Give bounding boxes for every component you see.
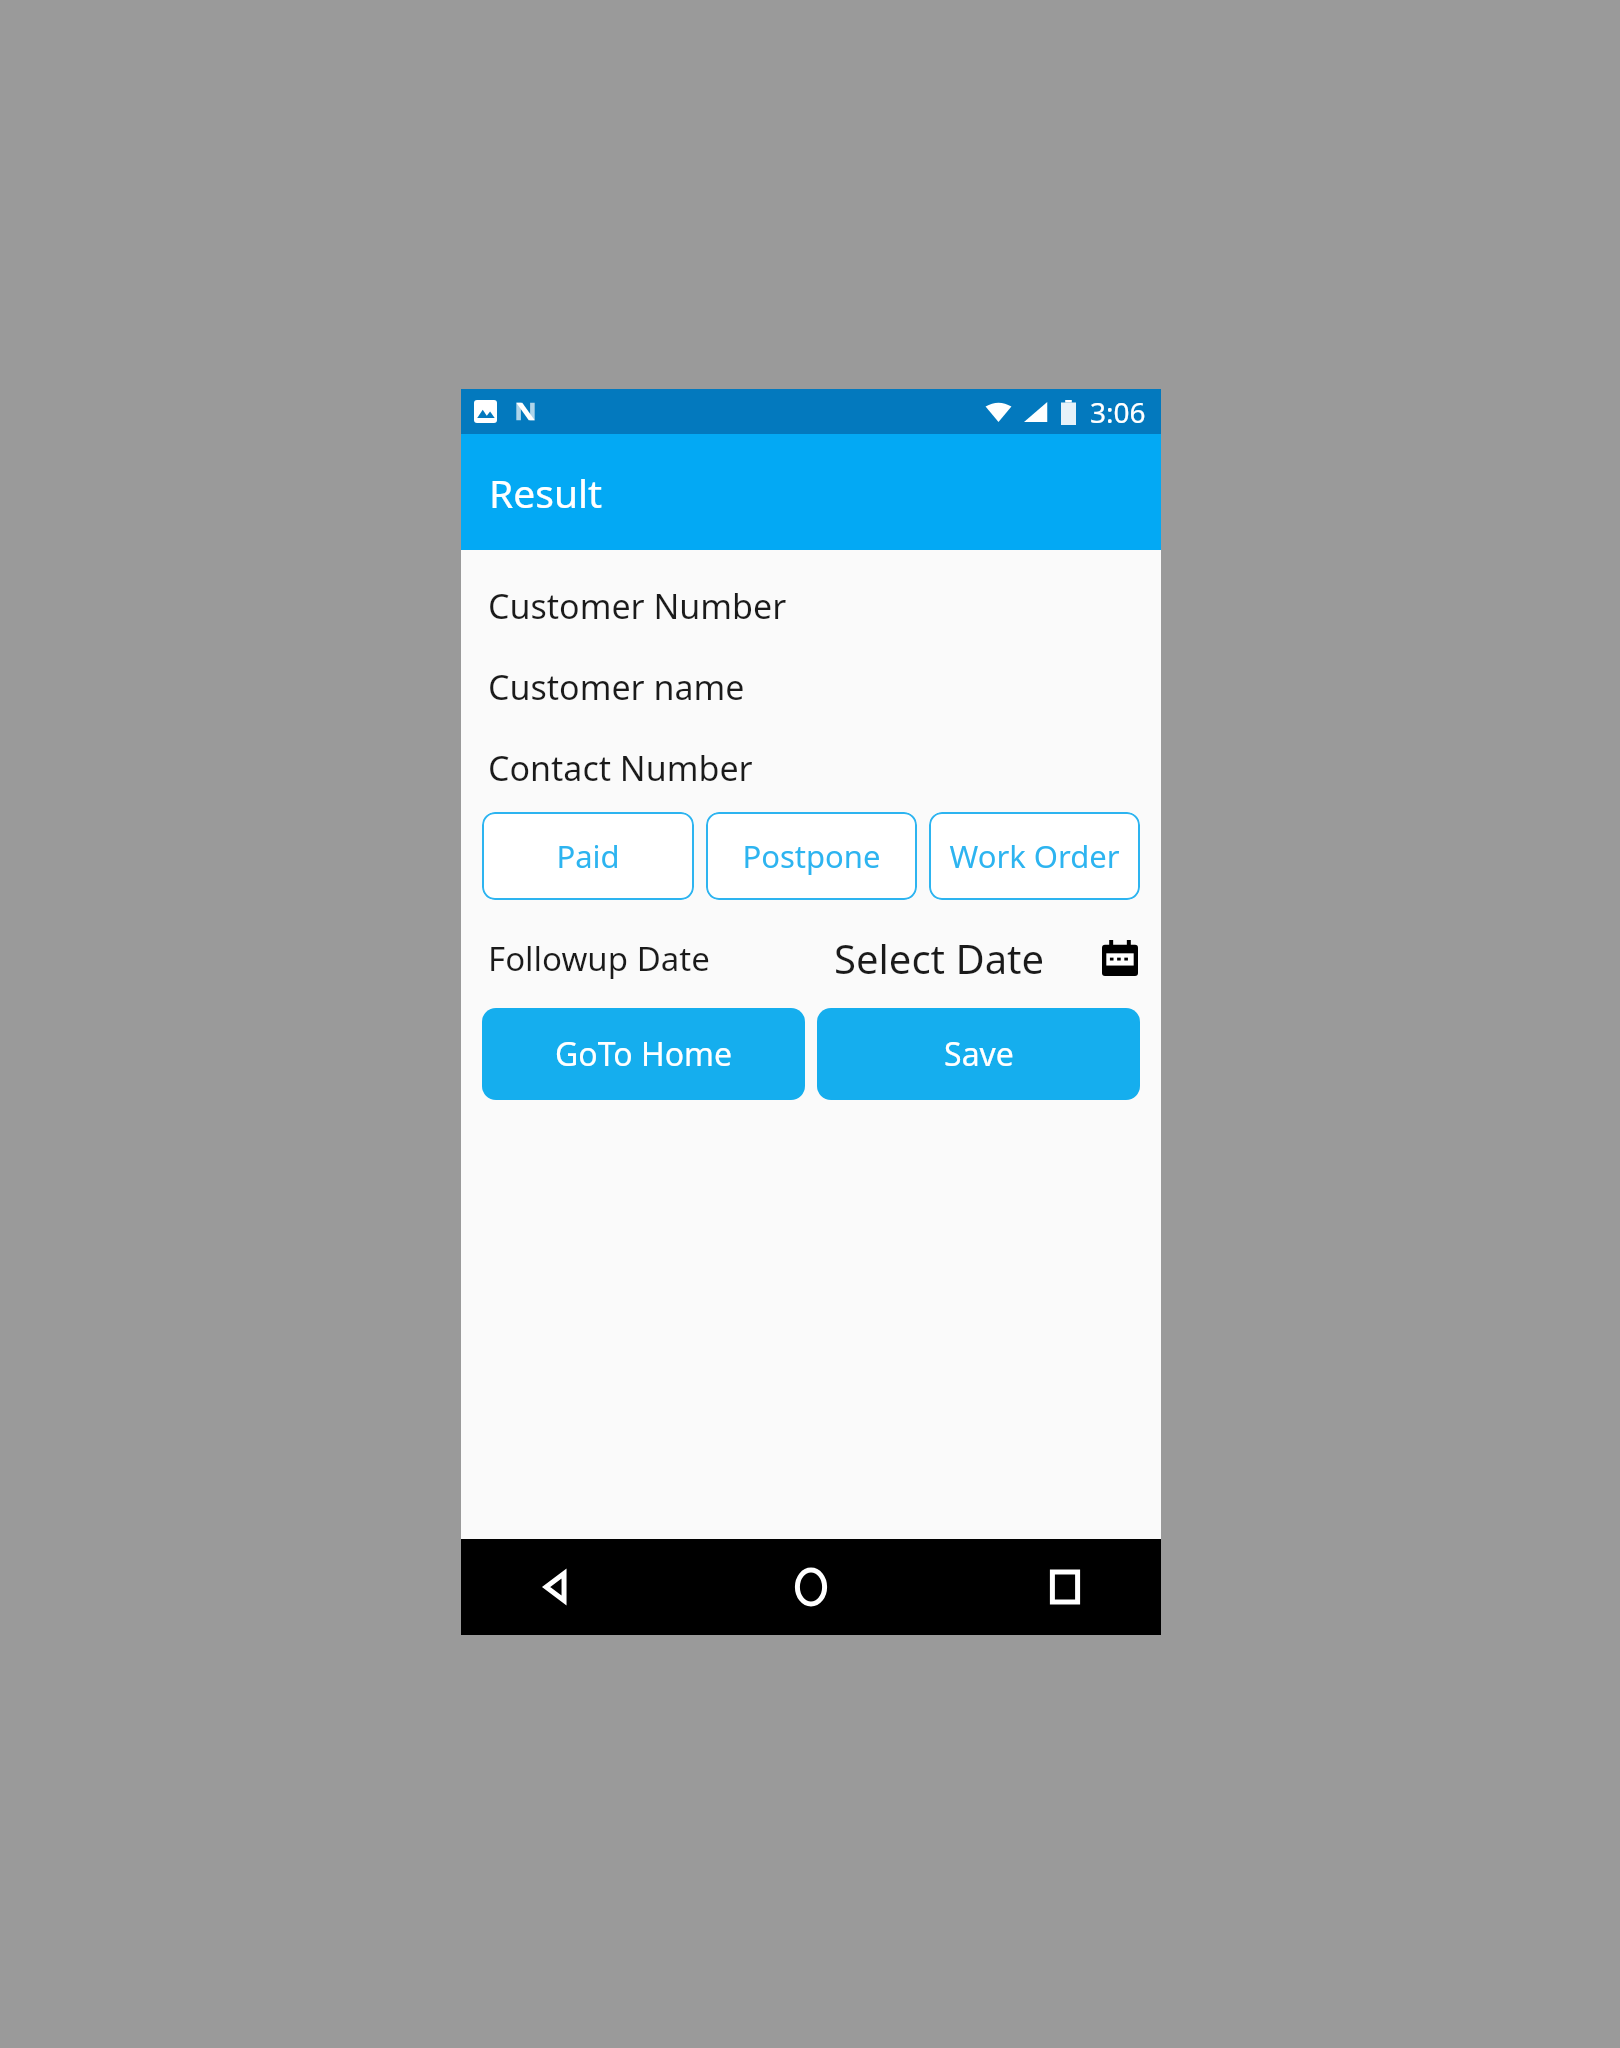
- button[interactable]: GoTo Home: [482, 1008, 805, 1100]
- button[interactable]: Select date: [1097, 935, 1143, 981]
- staticText: Paid: [556, 835, 620, 877]
- staticText: GoTo Home: [555, 1032, 732, 1076]
- button[interactable]: Select Date: [830, 931, 1049, 985]
- staticText: Followup Date: [488, 936, 710, 981]
- staticText: Save: [944, 1032, 1014, 1076]
- staticText: Customer name: [488, 664, 745, 710]
- staticText: Work Order: [949, 835, 1120, 877]
- button[interactable]: Home: [775, 1551, 847, 1623]
- staticText: Contact Number: [488, 745, 753, 791]
- button[interactable]: Postpone: [706, 812, 917, 900]
- button[interactable]: Back: [521, 1551, 593, 1623]
- button[interactable]: Work Order: [929, 812, 1140, 900]
- staticText: Customer Number: [488, 583, 787, 629]
- button[interactable]: Paid: [482, 812, 694, 900]
- button[interactable]: Recent apps: [1029, 1551, 1101, 1623]
- staticText: 3:06: [1090, 393, 1146, 431]
- staticText: Result: [489, 466, 603, 519]
- button[interactable]: Save: [817, 1008, 1140, 1100]
- staticText: Postpone: [742, 835, 881, 877]
